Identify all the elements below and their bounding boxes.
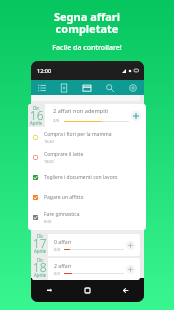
staticText: Aprile <box>30 120 43 126</box>
staticText: 12:00 <box>37 67 52 74</box>
button[interactable]: Dic <box>28 104 146 127</box>
button[interactable]: Search <box>98 80 121 95</box>
staticText: 18 <box>33 259 47 275</box>
staticText: 0/2 <box>54 271 61 276</box>
staticText: 16:30 <box>44 139 54 144</box>
staticText: Compra i fiori per la mamma <box>44 131 112 138</box>
button[interactable]: Add task <box>126 241 135 250</box>
button[interactable]: Add task <box>126 265 135 274</box>
button[interactable]: Back <box>106 278 144 302</box>
staticText: Pagare un affitto <box>44 194 84 201</box>
staticText: 0/0 <box>54 247 61 252</box>
staticText: 0 affari <box>54 238 72 245</box>
button[interactable]: Calendar <box>75 80 98 95</box>
button[interactable]: Dic <box>32 234 140 256</box>
button[interactable]: Recents <box>31 278 68 302</box>
staticText: Aprile <box>34 272 47 278</box>
staticText: Togliere i documenti con lavoro <box>44 174 118 181</box>
staticText: Aprile <box>34 248 47 254</box>
staticText: Fare ginnastica <box>44 211 80 218</box>
staticText: Facile da controllare! <box>0 43 174 53</box>
staticText: Dic <box>37 258 44 263</box>
button[interactable]: Togliere i documenti con lavoro <box>28 167 146 187</box>
button[interactable]: Notes <box>53 80 75 95</box>
button[interactable]: Add task <box>131 111 141 121</box>
button[interactable]: Settings <box>121 80 144 95</box>
staticText: 2 affari <box>54 262 72 269</box>
staticText: 2 affari non adempiti <box>53 107 109 115</box>
staticText: Dic <box>37 234 44 239</box>
button[interactable]: Lists <box>31 80 53 95</box>
button[interactable]: Fare ginnastica <box>28 207 146 227</box>
button[interactable]: Pagare un affitto <box>28 187 146 207</box>
staticText: Comprare il latte <box>44 151 84 158</box>
staticText: 3/5 <box>53 118 60 124</box>
staticText: 17 <box>33 235 47 251</box>
button[interactable]: Home <box>68 278 106 302</box>
button[interactable]: Compra i fiori per la mamma <box>28 127 146 147</box>
staticText: 16 <box>30 107 44 123</box>
staticText: Segna affari completate <box>0 9 174 36</box>
staticText: 8:00 <box>44 219 52 224</box>
button[interactable]: Dic <box>32 258 140 280</box>
button[interactable]: Comprare il latte <box>28 147 146 167</box>
staticText: Dic <box>33 105 40 111</box>
staticText: 18:00 <box>44 159 54 164</box>
